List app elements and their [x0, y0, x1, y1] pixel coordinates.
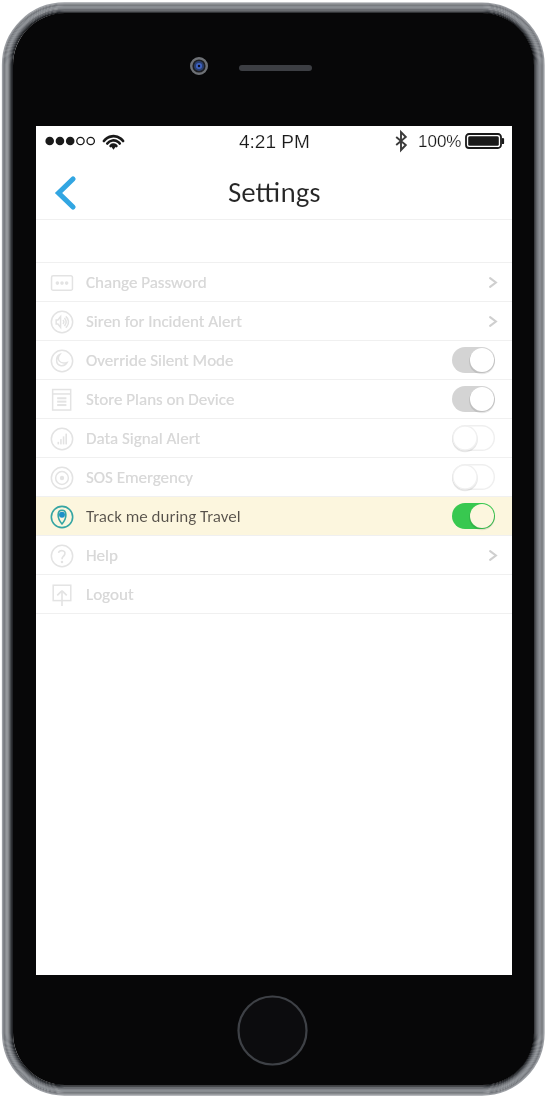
button[interactable]: Track me during Travel — [36, 497, 512, 535]
staticText: Data Signal Alert — [86, 428, 436, 449]
button[interactable]: Toggle — [452, 347, 495, 373]
staticText: Siren for Incident Alert — [86, 311, 436, 332]
button[interactable]: Back — [36, 166, 94, 219]
staticText: Help — [86, 545, 436, 566]
button[interactable]: Toggle — [452, 503, 495, 529]
staticText: 100% — [418, 132, 462, 151]
button[interactable]: SOS Emergency — [36, 458, 512, 496]
staticText: Track me during Travel — [86, 506, 436, 527]
staticText: SOS Emergency — [86, 467, 436, 488]
button[interactable]: Toggle — [452, 386, 495, 412]
button[interactable]: Toggle — [452, 464, 495, 490]
staticText: 4:21 PM — [239, 131, 310, 152]
staticText: Change Password — [86, 272, 436, 293]
staticText: Override Silent Mode — [86, 350, 436, 371]
button[interactable]: Change Password — [36, 263, 512, 301]
button[interactable]: Override Silent Mode — [36, 341, 512, 379]
button[interactable]: Toggle — [452, 425, 495, 451]
staticText: Store Plans on Device — [86, 389, 436, 410]
button[interactable]: Help — [36, 536, 512, 574]
button[interactable]: Logout — [36, 575, 512, 613]
button[interactable]: Store Plans on Device — [36, 380, 512, 418]
button[interactable]: Siren for Incident Alert — [36, 302, 512, 340]
staticText: Logout — [86, 584, 436, 605]
staticText: Settings — [228, 174, 321, 209]
button[interactable]: Data Signal Alert — [36, 419, 512, 457]
